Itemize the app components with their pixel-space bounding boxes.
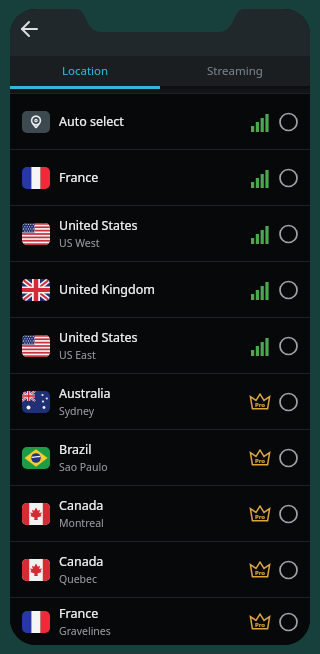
staticText: France bbox=[59, 169, 99, 186]
button[interactable]: United Kingdom bbox=[10, 262, 310, 317]
button[interactable] bbox=[10, 9, 50, 49]
button[interactable]: France bbox=[10, 598, 310, 645]
staticText: France bbox=[59, 605, 99, 622]
staticText: US West bbox=[59, 236, 100, 250]
button[interactable]: United States bbox=[10, 318, 310, 373]
staticText: Pro bbox=[255, 513, 266, 521]
button[interactable]: Auto select bbox=[10, 94, 310, 149]
staticText: Pro bbox=[255, 401, 266, 409]
staticText: Auto select bbox=[59, 113, 124, 130]
staticText: Canada bbox=[59, 497, 104, 514]
staticText: Australia bbox=[59, 385, 111, 402]
staticText: United States bbox=[59, 329, 138, 346]
staticText: Gravelines bbox=[59, 624, 111, 638]
button[interactable]: Brazil bbox=[10, 430, 310, 485]
staticText: Pro bbox=[255, 569, 266, 577]
staticText: Sydney bbox=[59, 404, 95, 418]
staticText: United Kingdom bbox=[59, 281, 155, 298]
button[interactable]: Location bbox=[10, 56, 160, 86]
staticText: Pro bbox=[255, 457, 266, 465]
staticText: United States bbox=[59, 217, 138, 234]
staticText: Streaming bbox=[207, 63, 263, 79]
staticText: Quebec bbox=[59, 572, 98, 586]
staticText: Pro bbox=[255, 621, 266, 629]
button[interactable]: United States bbox=[10, 206, 310, 261]
button[interactable]: Canada bbox=[10, 486, 310, 541]
staticText: Canada bbox=[59, 553, 104, 570]
button[interactable]: Canada bbox=[10, 542, 310, 597]
button[interactable]: Streaming bbox=[160, 56, 310, 86]
button[interactable]: Australia bbox=[10, 374, 310, 429]
staticText: US East bbox=[59, 348, 96, 362]
staticText: Sao Paulo bbox=[59, 460, 108, 474]
staticText: Brazil bbox=[59, 441, 92, 458]
button[interactable]: France bbox=[10, 150, 310, 205]
staticText: Location bbox=[62, 63, 109, 79]
staticText: Montreal bbox=[59, 516, 104, 530]
